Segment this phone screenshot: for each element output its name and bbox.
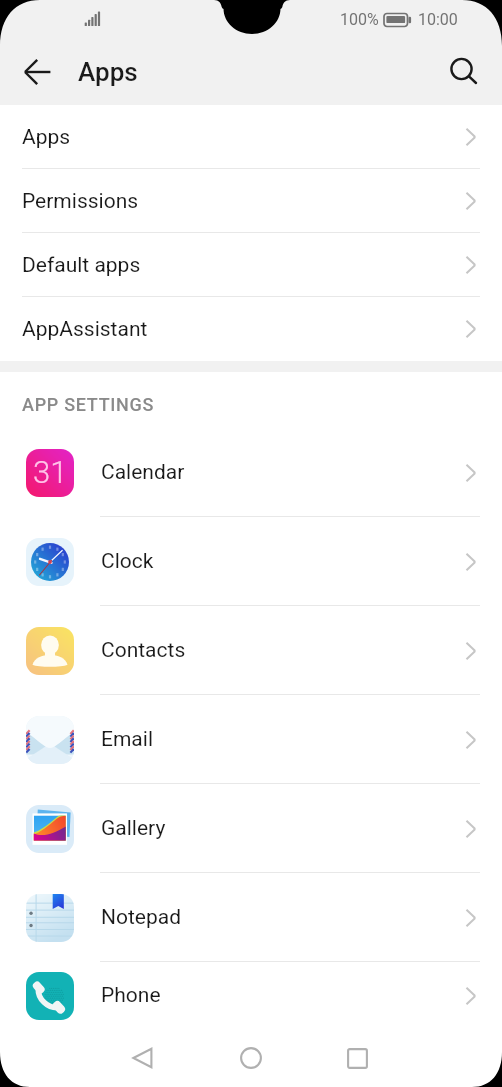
staticText: Clock (101, 549, 154, 574)
button[interactable]: Back (105, 1029, 181, 1087)
staticText: 100% (340, 10, 379, 29)
button[interactable]: Clock (0, 517, 502, 606)
staticText: 10:00 (418, 10, 458, 29)
staticText: Apps (78, 57, 138, 87)
button[interactable]: Notepad (0, 873, 502, 962)
button[interactable]: Home (213, 1029, 289, 1087)
button[interactable]: Permissions (0, 169, 502, 233)
staticText: Calendar (101, 460, 185, 485)
button[interactable]: AppAssistant (0, 297, 502, 361)
button[interactable]: 31 (0, 428, 502, 517)
staticText: Default apps (22, 253, 141, 278)
button[interactable]: Apps (0, 105, 502, 169)
staticText: Gallery (101, 816, 166, 841)
staticText: AppAssistant (22, 317, 148, 342)
staticText: APP SETTINGS (22, 394, 155, 415)
staticText: Phone (101, 983, 161, 1008)
button[interactable]: Email (0, 695, 502, 784)
button[interactable]: Gallery (0, 784, 502, 873)
button[interactable]: Phone (0, 962, 502, 1029)
button[interactable]: Recents (319, 1029, 395, 1087)
staticText: Notepad (101, 905, 182, 930)
button[interactable]: Contacts (0, 606, 502, 695)
button[interactable]: Default apps (0, 233, 502, 297)
staticText: Permissions (22, 189, 139, 214)
button[interactable]: Back (14, 48, 62, 96)
staticText: Email (101, 727, 153, 752)
staticText: 31 (33, 454, 68, 490)
staticText: Contacts (101, 638, 186, 663)
button[interactable]: Search (440, 48, 488, 96)
staticText: Apps (22, 125, 71, 150)
